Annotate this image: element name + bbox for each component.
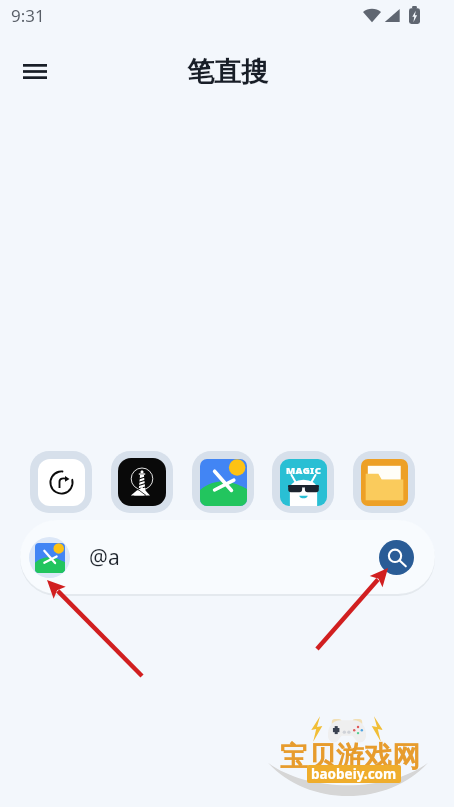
button[interactable]: Refresh <box>30 451 92 513</box>
staticText: MAGIC <box>286 464 322 477</box>
button[interactable]: Menu <box>11 45 59 93</box>
button[interactable]: @a <box>20 520 435 594</box>
staticText: 9:31 <box>11 4 45 27</box>
button[interactable]: Search <box>379 540 414 575</box>
button[interactable]: Photos <box>192 451 254 513</box>
button[interactable]: Magic <box>272 451 334 513</box>
button[interactable]: Files <box>353 451 415 513</box>
staticText: @a <box>89 543 120 572</box>
button[interactable]: Lighthouse <box>111 451 173 513</box>
staticText: 笔直搜 <box>187 55 268 89</box>
staticText: baobeiy.com <box>311 765 397 783</box>
staticText: 宝贝游戏网 <box>280 739 420 774</box>
